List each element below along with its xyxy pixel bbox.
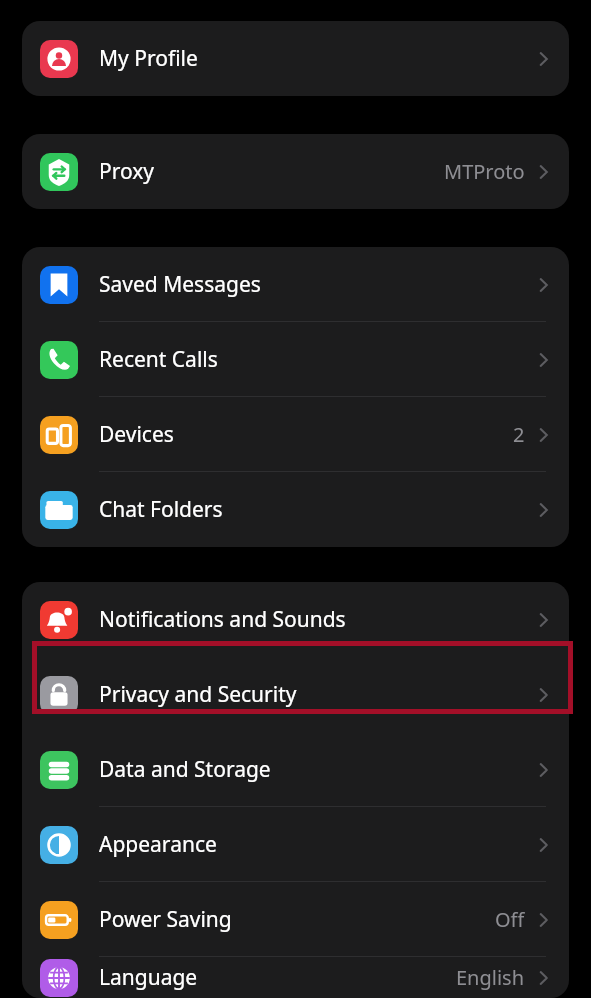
staticText: Data and Storage (99, 755, 271, 784)
staticText: English (456, 964, 525, 991)
button[interactable]: Proxy (22, 134, 569, 209)
staticText: Notifications and Sounds (99, 605, 346, 634)
staticText: Chat Folders (99, 495, 223, 524)
staticText: Off (495, 906, 525, 933)
staticText: Language (99, 963, 198, 992)
button[interactable]: Language (22, 957, 569, 998)
button[interactable]: Notifications and Sounds (22, 582, 569, 657)
button[interactable]: Privacy and Security (22, 657, 569, 732)
staticText: Appearance (99, 830, 217, 859)
button[interactable]: Data and Storage (22, 732, 569, 807)
staticText: Saved Messages (99, 270, 261, 299)
button[interactable]: Appearance (22, 807, 569, 882)
button[interactable]: Power Saving (22, 882, 569, 957)
staticText: Power Saving (99, 905, 232, 934)
staticText: Proxy (99, 157, 155, 186)
staticText: Privacy and Security (99, 680, 297, 709)
button[interactable]: Chat Folders (22, 472, 569, 547)
staticText: Recent Calls (99, 345, 218, 374)
button[interactable]: Recent Calls (22, 322, 569, 397)
staticText: 2 (513, 421, 525, 448)
button[interactable]: Devices (22, 397, 569, 472)
staticText: Devices (99, 420, 174, 449)
other: Privacy and Security highlighted (32, 641, 573, 714)
staticText: My Profile (99, 44, 198, 73)
button[interactable]: My Profile (22, 21, 569, 96)
staticText: MTProto (444, 158, 525, 185)
button[interactable]: Saved Messages (22, 247, 569, 322)
